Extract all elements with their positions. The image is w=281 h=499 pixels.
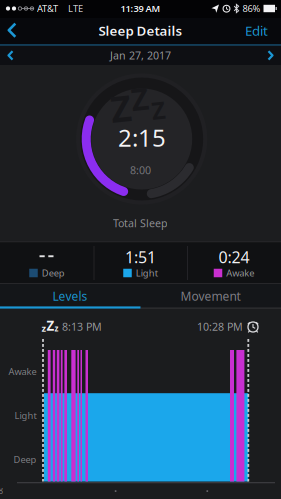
staticText: Sleep Details	[98, 22, 182, 39]
staticText: 10:28 PM	[197, 319, 243, 334]
staticText: 8	[0, 486, 3, 496]
staticText: Total Sleep	[113, 216, 168, 230]
staticText: Awake	[226, 267, 254, 279]
button[interactable]: Levels	[0, 0, 281, 499]
button[interactable]	[0, 0, 281, 499]
staticText: Light	[14, 409, 36, 422]
staticText: 86%	[242, 2, 260, 15]
staticText: Z	[110, 84, 131, 132]
staticText: z	[54, 323, 58, 334]
button[interactable]	[0, 0, 281, 499]
staticText: LTE	[68, 2, 83, 15]
staticText: Edit	[245, 22, 268, 39]
staticText: Awake	[8, 365, 36, 378]
staticText: 11:39 AM	[120, 2, 160, 15]
staticText: 8:13 PM	[62, 319, 102, 334]
staticText: Movement	[180, 288, 240, 304]
staticText: Light	[136, 267, 158, 279]
staticText: 8:00	[130, 163, 151, 177]
button[interactable]	[0, 0, 281, 499]
staticText: Deep	[42, 267, 65, 279]
staticText: AT&T	[37, 2, 58, 15]
staticText: 2:15	[118, 122, 166, 153]
staticText: Deep	[13, 453, 36, 466]
staticText: Z	[151, 94, 165, 126]
staticText: 1:51	[125, 246, 156, 268]
staticText: Z	[131, 78, 149, 119]
staticText: Jan 27, 2017	[110, 48, 171, 62]
staticText: z	[41, 322, 46, 334]
staticText: 0:24	[218, 246, 249, 268]
staticText: Z	[46, 317, 54, 334]
button[interactable]: Edit	[0, 0, 281, 499]
staticText: Levels	[52, 288, 87, 304]
button[interactable]: Movement	[0, 0, 281, 499]
